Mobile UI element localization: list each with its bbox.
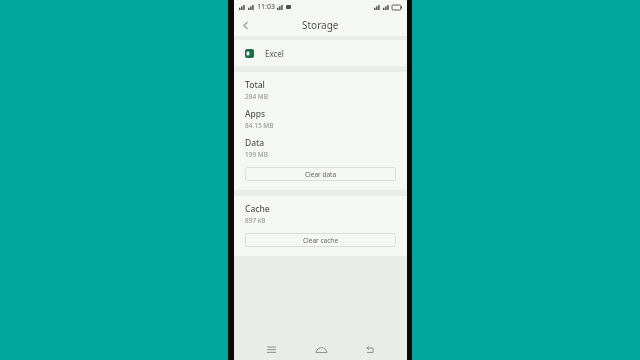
button[interactable]: Excel xyxy=(234,40,407,66)
staticText: Data xyxy=(245,137,265,149)
staticText: Clear cache xyxy=(303,236,339,245)
staticText: Total xyxy=(245,79,265,91)
staticText: Storage xyxy=(302,18,339,32)
staticText: 11:03 xyxy=(257,2,275,12)
staticText: 897 kB xyxy=(245,216,266,225)
button[interactable]: Clear cache xyxy=(245,233,396,247)
staticText: 284 MB xyxy=(245,92,268,101)
button[interactable]: Back xyxy=(234,14,256,36)
staticText: Clear data xyxy=(305,170,337,179)
staticText: 199 MB xyxy=(245,150,268,159)
button[interactable]: Recents xyxy=(258,338,284,360)
staticText: 84.15 MB xyxy=(245,121,274,130)
staticText: Apps xyxy=(245,108,266,120)
button[interactable]: Back xyxy=(357,338,383,360)
staticText: Cache xyxy=(245,203,270,215)
staticText: Excel xyxy=(265,48,284,59)
button[interactable]: Clear data xyxy=(245,167,396,181)
button[interactable]: Home xyxy=(308,338,334,360)
